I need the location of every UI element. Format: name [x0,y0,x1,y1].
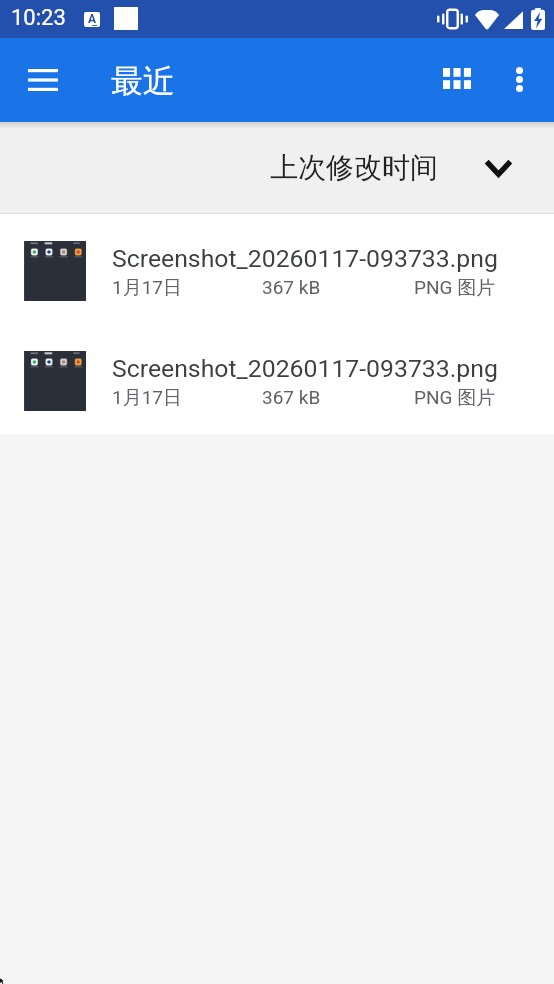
staticText: 367 kB [262,276,321,298]
staticText: 367 kB [262,386,321,408]
staticText: PNG 图片 [414,386,496,410]
button[interactable]: Open navigation drawer [14,51,72,109]
staticText: Screenshot_20260117-093733.png [112,244,498,273]
button[interactable]: Grid view [428,49,486,107]
staticText: Screenshot_20260117-093733.png [112,354,498,383]
button[interactable]: Screenshot_20260117-093733.png [0,324,554,434]
staticText: 10:23 [11,5,66,31]
staticText: 1月17日 [112,386,183,410]
staticText: A [88,12,97,26]
button[interactable]: More options [490,50,548,108]
button[interactable]: 上次修改时间 [254,136,554,199]
button[interactable]: Screenshot_20260117-093733.png [0,214,554,324]
staticText: 上次修改时间 [270,150,438,185]
staticText: PNG 图片 [414,276,496,300]
staticText: 最近 [111,61,175,101]
staticText: 1月17日 [112,276,183,300]
